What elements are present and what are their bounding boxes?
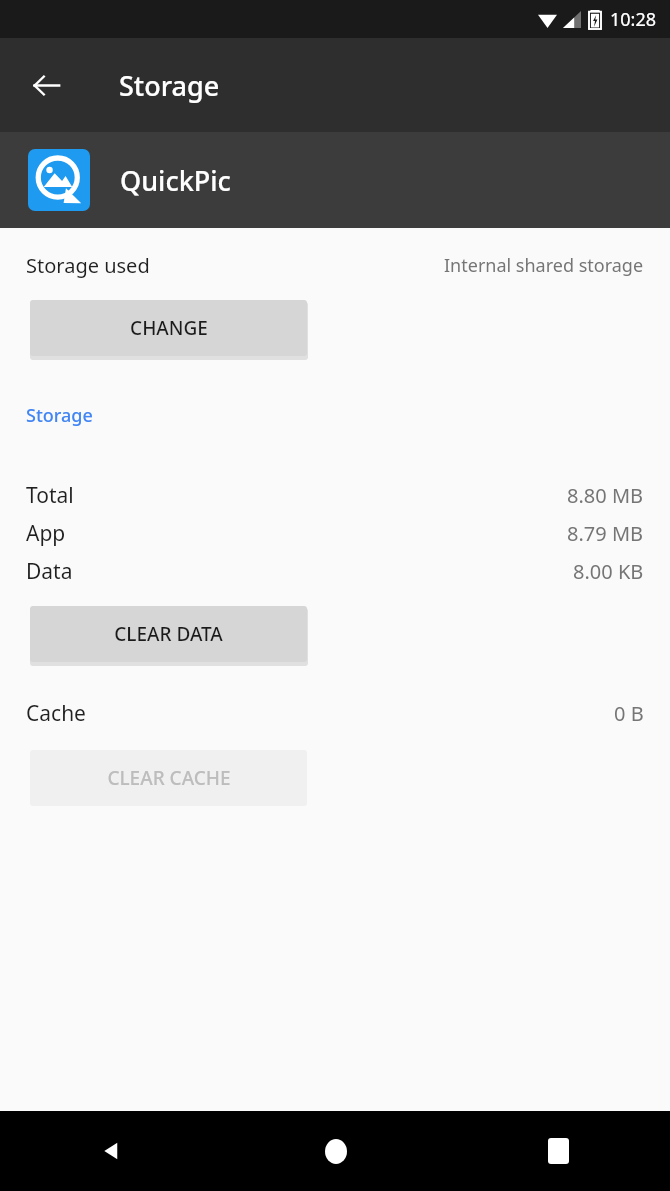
staticText: App [26, 519, 66, 548]
staticText: 8.79 MB [567, 520, 644, 547]
staticText: QuickPic [120, 162, 231, 199]
button[interactable]: Home [224, 1111, 447, 1191]
staticText: Storage used [26, 252, 150, 279]
button[interactable]: Back [16, 55, 76, 115]
staticText: Storage [119, 67, 220, 104]
staticText: CLEAR DATA [114, 621, 223, 647]
button[interactable]: CLEAR DATA [30, 606, 307, 662]
staticText: Internal shared storage [444, 253, 644, 278]
staticText: 10:28 [610, 7, 657, 32]
staticText: Total [26, 481, 74, 510]
button[interactable]: CLEAR CACHE [30, 750, 307, 806]
button[interactable]: CHANGE [30, 300, 307, 356]
staticText: 8.80 MB [567, 482, 644, 509]
staticText: CLEAR CACHE [107, 765, 231, 791]
staticText: Data [26, 557, 73, 586]
staticText: 8.00 KB [573, 558, 644, 585]
staticText: CHANGE [130, 315, 208, 341]
staticText: Cache [26, 699, 86, 728]
button[interactable]: Recent apps [447, 1111, 670, 1191]
staticText: Storage [26, 403, 93, 428]
button[interactable]: Back [0, 1111, 224, 1191]
staticText: 0 B [614, 700, 644, 727]
